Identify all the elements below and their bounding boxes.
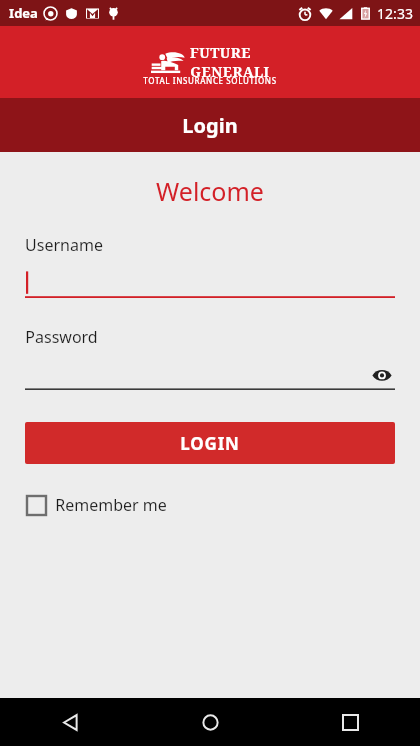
staticText: TOTAL INSURANCE SOLUTIONS bbox=[143, 75, 277, 86]
button[interactable]: Show password bbox=[369, 362, 395, 388]
staticText: Login bbox=[182, 112, 238, 139]
staticText: Remember me bbox=[55, 494, 167, 516]
button[interactable]: Back bbox=[0, 698, 140, 746]
staticText: GENERALI bbox=[190, 62, 270, 81]
button[interactable]: LOGIN bbox=[25, 422, 395, 464]
button[interactable]: Home bbox=[140, 698, 280, 746]
button[interactable] bbox=[25, 270, 395, 298]
staticText: Idea bbox=[9, 4, 38, 22]
staticText: Password bbox=[25, 326, 98, 348]
button[interactable]: Recent apps bbox=[280, 698, 420, 746]
staticText: FUTURE bbox=[190, 43, 251, 62]
staticText: 12:33 bbox=[377, 4, 413, 23]
staticText: LOGIN bbox=[180, 432, 240, 455]
staticText: Welcome bbox=[156, 174, 264, 208]
button[interactable]: Show password bbox=[25, 360, 395, 390]
staticText: Username bbox=[25, 234, 103, 256]
button[interactable]: Remember me bbox=[25, 490, 169, 520]
